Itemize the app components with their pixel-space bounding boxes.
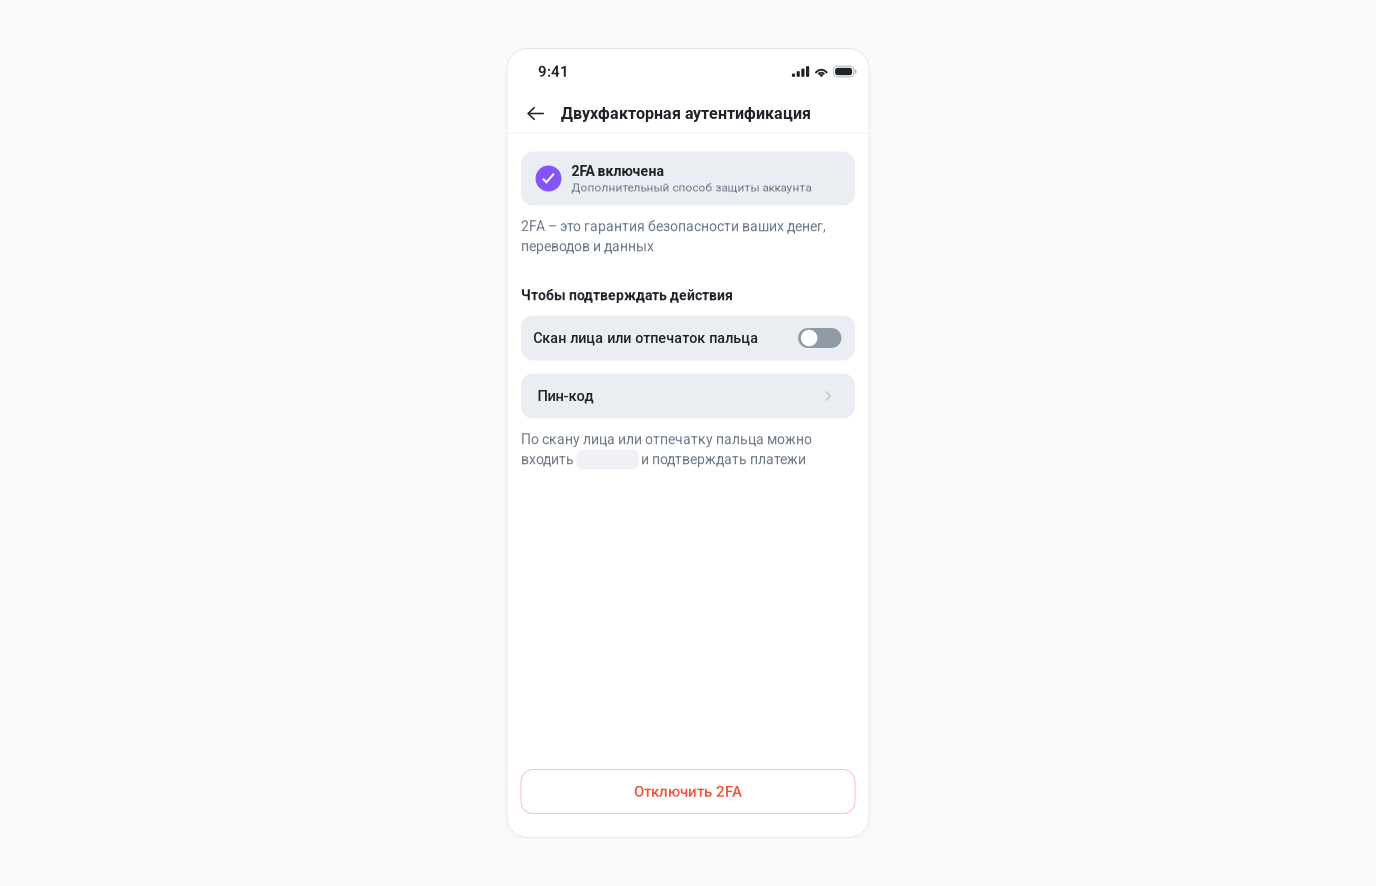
button[interactable]: Отключить 2FA bbox=[521, 769, 855, 813]
staticText: 9:41 bbox=[538, 63, 569, 80]
staticText: входить bbox=[521, 451, 574, 468]
staticText: 2FA включена bbox=[571, 163, 663, 179]
staticText: По скану лица или отпечатку пальца можно bbox=[521, 431, 812, 448]
staticText: Двухфакторная аутентификация bbox=[561, 104, 811, 123]
staticText: Отключить 2FA bbox=[634, 783, 742, 800]
staticText: Чтобы подтверждать действия bbox=[521, 287, 733, 304]
staticText: 2FA – это гарантия безопасности ваших де… bbox=[521, 218, 826, 235]
staticText: Дополнительный способ защиты аккаунта bbox=[571, 181, 811, 194]
button[interactable]: Назад bbox=[520, 98, 552, 128]
button[interactable]: Пин-код bbox=[521, 373, 855, 418]
staticText: Пин-код bbox=[538, 387, 594, 405]
staticText: Скан лица или отпечаток пальца bbox=[533, 330, 758, 346]
staticText: и подтверждать платежи bbox=[641, 451, 806, 468]
button[interactable]: Скан лица или отпечаток пальца bbox=[521, 315, 855, 360]
staticText: переводов и данных bbox=[521, 238, 654, 255]
